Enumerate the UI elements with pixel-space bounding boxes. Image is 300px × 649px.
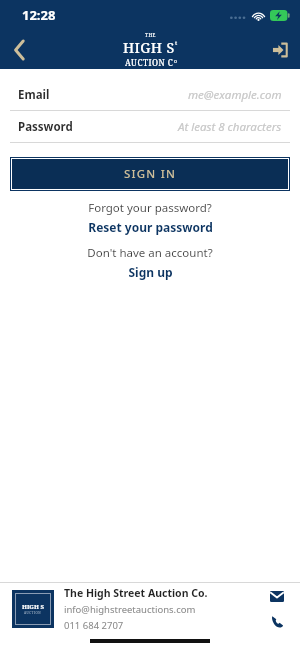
staticText: THE bbox=[145, 32, 157, 38]
staticText: Forgot your password? bbox=[88, 200, 212, 216]
button[interactable]: Back bbox=[0, 30, 40, 69]
staticText: HIGH S bbox=[22, 603, 44, 611]
staticText: SIGN IN bbox=[124, 166, 177, 182]
staticText: Don't have an account? bbox=[87, 245, 213, 261]
button[interactable]: Password bbox=[0, 111, 300, 143]
button[interactable]: Email bbox=[0, 79, 300, 111]
staticText: Reset your password bbox=[88, 219, 213, 235]
staticText: The High Street Auction Co. bbox=[64, 586, 208, 600]
staticText: me@example.com bbox=[188, 87, 282, 103]
staticText: AUCTION bbox=[24, 611, 42, 615]
staticText: AUCTION C bbox=[125, 57, 174, 68]
staticText: At least 8 characters bbox=[178, 119, 282, 135]
button[interactable]: Reset your password bbox=[82, 218, 219, 236]
button[interactable]: SIGN IN bbox=[12, 159, 288, 189]
staticText: t bbox=[175, 39, 178, 47]
staticText: info@highstreetauctions.com bbox=[64, 603, 196, 616]
button[interactable]: Sign in bbox=[260, 30, 300, 69]
staticText: 011 684 2707 bbox=[64, 619, 124, 632]
button[interactable]: Sign up bbox=[122, 263, 179, 281]
button[interactable]: Call us bbox=[266, 610, 288, 632]
staticText: 12:28 bbox=[22, 6, 56, 24]
staticText: Email bbox=[18, 87, 50, 103]
staticText: HIGH S bbox=[123, 38, 175, 57]
staticText: Sign up bbox=[128, 264, 173, 280]
staticText: o bbox=[174, 58, 177, 65]
button[interactable]: Email us bbox=[266, 585, 288, 607]
staticText: Password bbox=[18, 119, 73, 135]
